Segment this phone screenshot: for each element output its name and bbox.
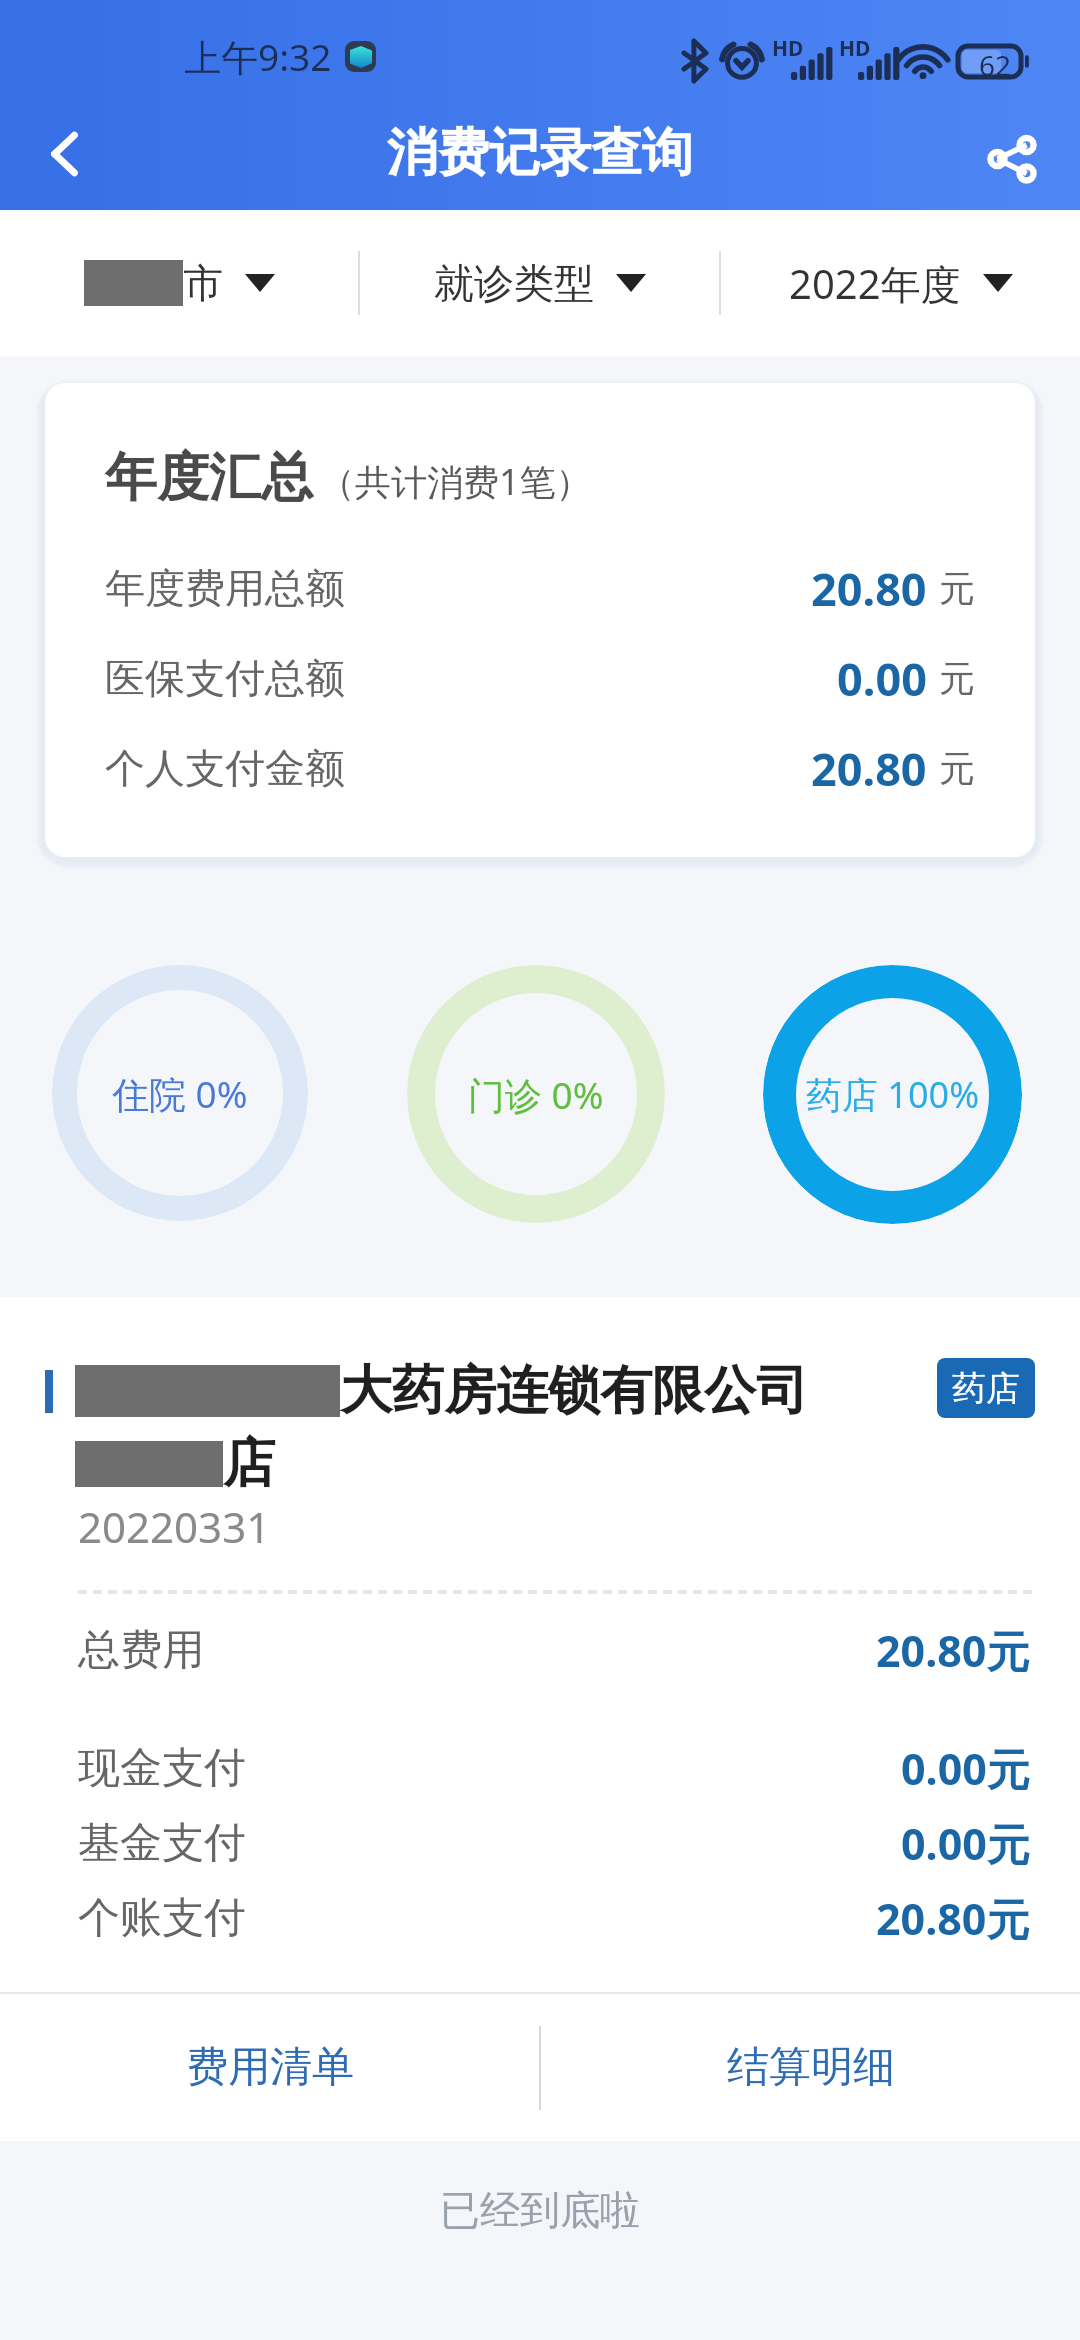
staticText: 店 bbox=[223, 1431, 275, 1497]
staticText: 门诊 0% bbox=[468, 1069, 604, 1120]
staticText: 药店 bbox=[952, 1367, 1020, 1410]
button[interactable]: 结算明细 bbox=[541, 1994, 1080, 2141]
staticText: 个账支付 bbox=[78, 1892, 246, 1945]
button[interactable]: 药店 100% bbox=[763, 965, 1022, 1224]
staticText: （共计消费1笔） bbox=[319, 457, 592, 506]
staticText: 元 bbox=[939, 566, 975, 611]
button[interactable]: 药店 bbox=[937, 1358, 1035, 1418]
button[interactable]: 门诊 0% bbox=[407, 965, 665, 1223]
staticText: HD bbox=[772, 34, 804, 63]
staticText: 0.00元 bbox=[901, 1814, 1030, 1873]
staticText: 总费用 bbox=[78, 1624, 204, 1677]
button[interactable]: 2022年度 bbox=[721, 210, 1080, 356]
staticText: 费用清单 bbox=[186, 2041, 354, 2094]
button[interactable]: Share bbox=[956, 108, 1068, 210]
staticText: 年度汇总 bbox=[105, 445, 313, 511]
button[interactable]: 大药房连锁有限公司 bbox=[0, 1297, 1080, 2141]
staticText: 元 bbox=[939, 746, 975, 791]
button[interactable]: 费用清单 bbox=[0, 1994, 539, 2141]
staticText: 药店 100% bbox=[806, 1070, 980, 1119]
staticText: 住院 0% bbox=[112, 1068, 248, 1119]
button[interactable]: Back bbox=[8, 98, 120, 210]
staticText: 20.80 bbox=[811, 558, 927, 619]
staticText: 0.00元 bbox=[901, 1739, 1030, 1798]
staticText: 医保支付总额 bbox=[105, 653, 345, 703]
staticText: 消费记录查询 bbox=[387, 121, 693, 185]
staticText: 上午9:32 bbox=[184, 31, 332, 82]
button[interactable]: 就诊类型 bbox=[360, 210, 719, 356]
staticText: 20.80元 bbox=[876, 1621, 1030, 1680]
staticText: 结算明细 bbox=[727, 2041, 895, 2094]
button[interactable]: 市 bbox=[0, 210, 358, 356]
staticText: 20.80元 bbox=[876, 1889, 1030, 1948]
staticText: 现金支付 bbox=[78, 1742, 246, 1795]
staticText: 已经到底啦 bbox=[440, 2185, 640, 2235]
staticText: 就诊类型 bbox=[434, 258, 594, 308]
staticText: 2022年度 bbox=[789, 256, 961, 311]
staticText: 基金支付 bbox=[78, 1817, 246, 1870]
button[interactable]: 住院 0% bbox=[52, 965, 308, 1221]
staticText: 20220331 bbox=[78, 1498, 271, 1555]
staticText: 62 bbox=[979, 46, 1012, 76]
staticText: HD bbox=[839, 34, 871, 63]
staticText: 元 bbox=[939, 656, 975, 701]
staticText: 年度费用总额 bbox=[105, 563, 345, 613]
staticText: 0.00 bbox=[837, 648, 927, 709]
staticText: 20.80 bbox=[811, 738, 927, 799]
staticText: 个人支付金额 bbox=[105, 743, 345, 793]
staticText: 市 bbox=[183, 258, 223, 308]
staticText: 大药房连锁有限公司 bbox=[340, 1358, 808, 1424]
